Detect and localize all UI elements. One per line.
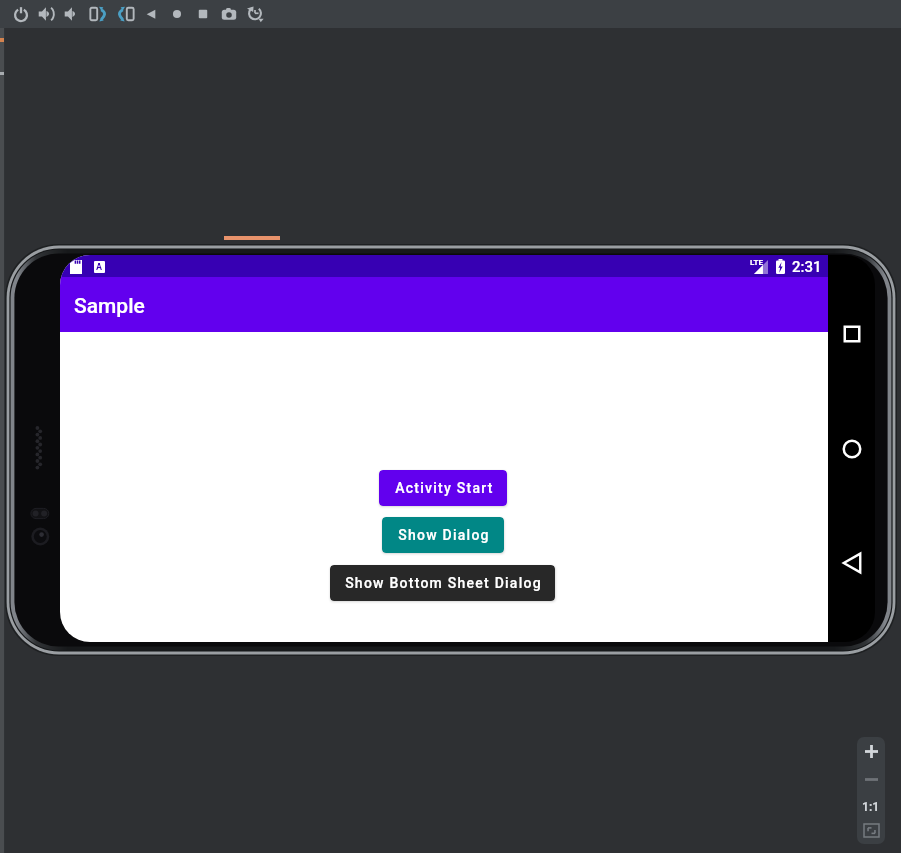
button[interactable]: Volume down: [60, 1, 86, 27]
button[interactable]: Rotate left: [86, 1, 112, 27]
button[interactable]: Fit to screen: [857, 816, 885, 844]
button[interactable]: Overview: [190, 1, 216, 27]
button[interactable]: Back: [138, 1, 164, 27]
button[interactable]: Show Dialog: [382, 517, 504, 553]
button[interactable]: Activity Start: [379, 470, 507, 506]
button[interactable]: Power: [8, 1, 34, 27]
button[interactable]: Home: [164, 1, 190, 27]
button[interactable]: Snapshot control: [242, 1, 268, 27]
staticText: Show Dialog: [398, 527, 490, 543]
button[interactable]: Show Bottom Sheet Dialog: [330, 565, 555, 601]
button[interactable]: Volume up: [34, 1, 60, 27]
button[interactable]: Take screenshot: [216, 1, 242, 27]
button[interactable]: Recent apps: [835, 317, 869, 351]
button[interactable]: Back: [835, 546, 869, 580]
staticText: Show Bottom Sheet Dialog: [345, 575, 542, 591]
button[interactable]: Zoom out: [857, 765, 885, 793]
button[interactable]: Zoom in: [857, 737, 885, 765]
button[interactable]: Actual size: [857, 793, 885, 821]
staticText: Activity Start: [395, 480, 494, 496]
staticText: LTE: [750, 258, 763, 267]
staticText: 2:31: [792, 258, 822, 276]
staticText: A: [96, 262, 103, 273]
button[interactable]: Home: [835, 432, 869, 466]
button[interactable]: Rotate right: [112, 1, 138, 27]
staticText: Sample: [74, 294, 145, 319]
staticText: 1:1: [862, 800, 880, 814]
